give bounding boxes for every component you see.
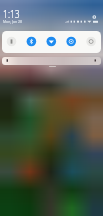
staticText: 1:13	[3, 7, 20, 22]
staticText: Mon, Jan 28	[3, 19, 23, 24]
